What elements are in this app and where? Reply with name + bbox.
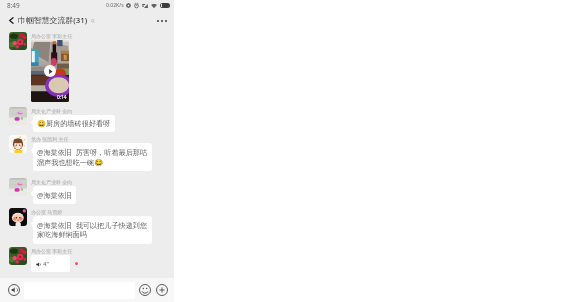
button[interactable]: Avatar (9, 107, 27, 125)
button[interactable]: More (156, 284, 168, 296)
button[interactable]: 😄厨房的墙砖很好看呀 (33, 115, 115, 132)
button[interactable]: Avatar (9, 135, 27, 153)
staticText: 0:14 (57, 94, 67, 101)
staticText: 局文化产业科 全向 (31, 179, 73, 186)
staticText: 8:49 (7, 1, 20, 10)
staticText: @海棠依旧 (37, 190, 72, 200)
staticText: 0.02K/s (106, 2, 124, 9)
button[interactable]: @海棠依旧 我可以把儿子快递到您 家吃海鲜焖面吗 (33, 216, 152, 244)
button[interactable]: Play video (31, 40, 69, 102)
staticText: 局办公室 李彩主任 (31, 248, 73, 255)
button[interactable]: Avatar (9, 178, 27, 196)
staticText: 局文化产业科 全向 (31, 108, 73, 115)
button[interactable]: Avatar (9, 208, 27, 226)
button[interactable]: @海棠依旧 厉害呀，听着最后那咕 溜声我也想吃一碗😂 (33, 143, 152, 171)
staticText: @海棠依旧 厉害呀，听着最后那咕 溜声我也想吃一碗😂 (37, 147, 148, 167)
button[interactable]: More options (149, 11, 174, 30)
staticText: 党办 张凯利 主任 (31, 136, 69, 143)
button[interactable]: Avatar (9, 32, 27, 50)
staticText: 4" (43, 260, 49, 268)
staticText: 😄厨房的墙砖很好看呀 (37, 119, 111, 128)
staticText: 局办公室 李彩主任 (31, 33, 73, 40)
staticText: 巾帼智慧交流群(31) (18, 15, 88, 26)
button[interactable]: Emoji (139, 284, 151, 296)
button[interactable]: Back (0, 11, 18, 30)
button[interactable]: Avatar (9, 247, 27, 265)
button[interactable]: 4" (31, 255, 70, 272)
button[interactable]: @海棠依旧 (33, 186, 76, 204)
staticText: @海棠依旧 我可以把儿子快递到您 家吃海鲜焖面吗 (37, 220, 148, 240)
staticText: 办公室 马雪娇 (31, 209, 63, 216)
button[interactable]: Voice input (8, 284, 20, 296)
